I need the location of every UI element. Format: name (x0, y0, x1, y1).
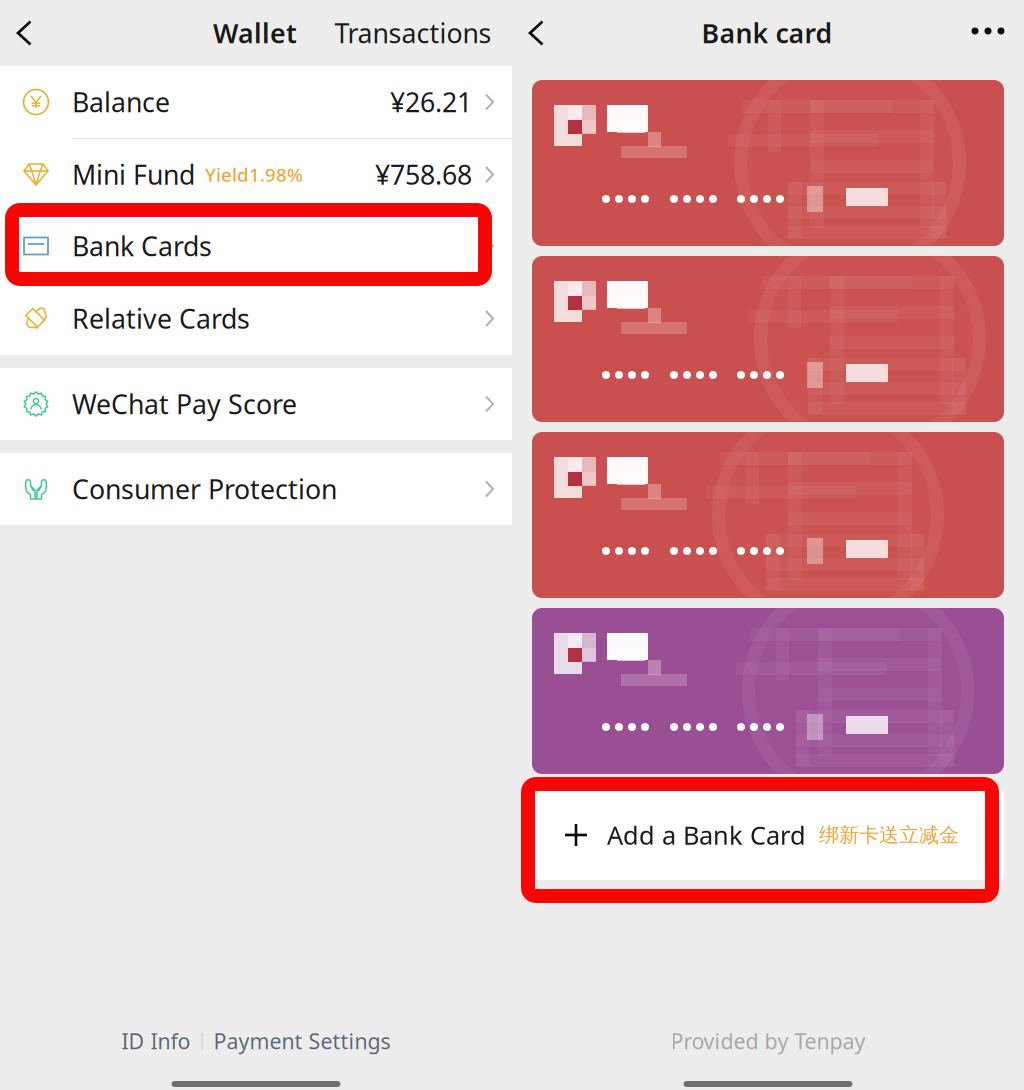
staticText: Relative Cards (72, 301, 250, 336)
button[interactable]: Relative Cards (0, 282, 512, 355)
button[interactable]: Back (0, 0, 48, 66)
button[interactable]: WeChat Pay Score (0, 368, 512, 440)
staticText: Payment Settings (213, 1027, 390, 1055)
staticText: Provided by Tenpay (670, 1027, 865, 1055)
button[interactable]: Transactions (328, 0, 498, 66)
button[interactable]: More options (960, 0, 1016, 64)
button[interactable]: Add a Bank Card (532, 790, 1004, 880)
button[interactable]: ID Info (121, 1027, 201, 1055)
button[interactable]: Consumer Protection (0, 453, 512, 525)
button[interactable]: Mini Fund (0, 139, 512, 210)
staticText: ¥758.68 (375, 157, 472, 192)
button[interactable]: Bank Cards (0, 210, 512, 282)
staticText: Balance (72, 84, 170, 120)
staticText: Bank card (701, 15, 832, 51)
staticText: WeChat Pay Score (72, 386, 297, 422)
staticText: Bank Cards (72, 228, 212, 264)
staticText: ¥26.21 (390, 84, 472, 120)
staticText: Transactions (334, 15, 491, 51)
staticText: ID Info (121, 1027, 190, 1055)
staticText: Wallet (213, 15, 297, 51)
staticText: 绑新卡送立减金 (819, 823, 959, 847)
staticText: Add a Bank Card (607, 818, 806, 852)
staticText: Consumer Protection (72, 471, 337, 507)
staticText: Yield1.98% (205, 162, 303, 187)
button[interactable]: Balance (0, 66, 512, 138)
button[interactable]: Back (512, 0, 560, 66)
staticText: Mini Fund (72, 157, 195, 192)
button[interactable]: Payment Settings (202, 1027, 390, 1055)
